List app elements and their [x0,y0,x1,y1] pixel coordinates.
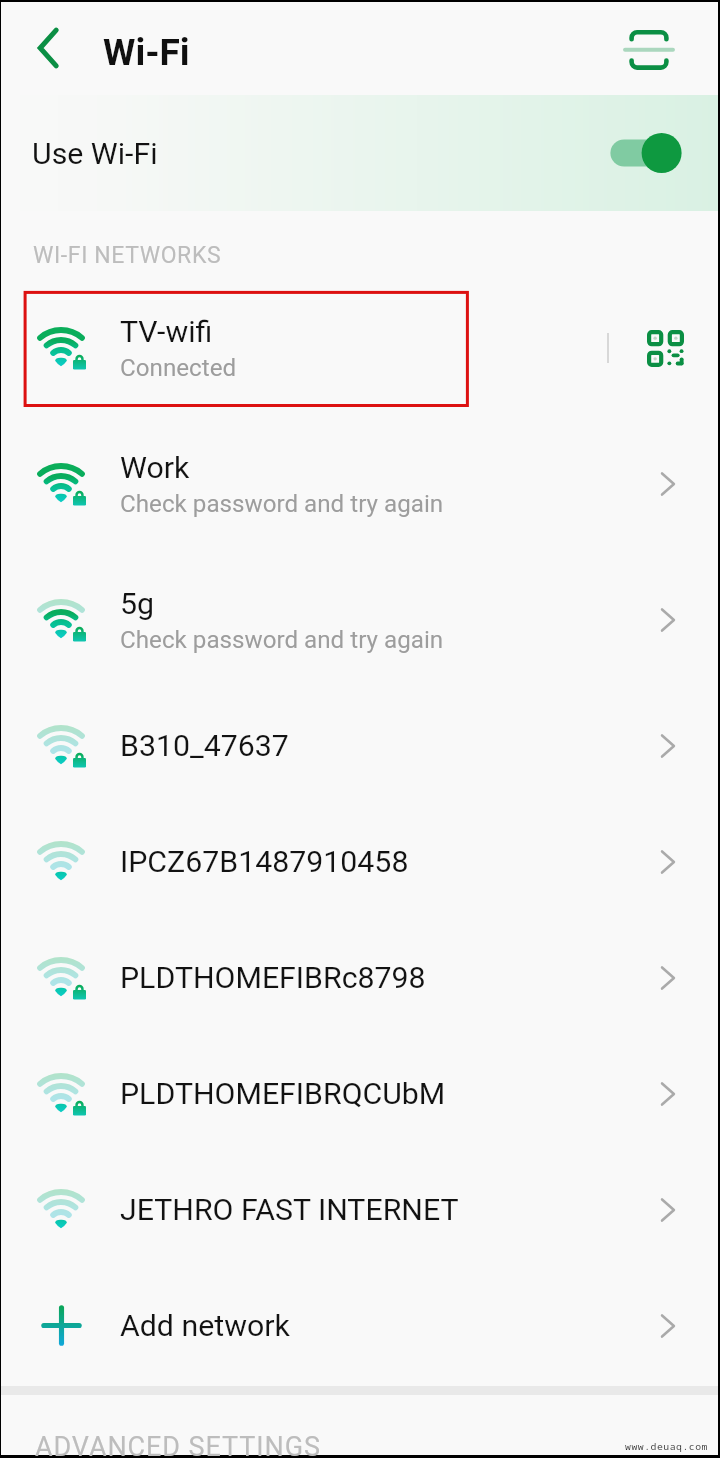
staticText: Wi-Fi [103,31,190,74]
staticText: PLDTHOMEFIBRc8798 [120,960,426,996]
button[interactable]: Share Wi-Fi network QR code [637,320,693,376]
button[interactable]: Work [1,416,718,552]
staticText: Work [120,450,190,486]
button[interactable]: TV-wifi [1,280,718,416]
staticText: TV-wifi [120,314,213,350]
button[interactable]: Scan QR code [617,18,681,82]
staticText: 5g [120,586,155,622]
button[interactable]: IPCZ67B1487910458 [1,804,718,920]
button[interactable]: 5g [1,552,718,688]
staticText: WI-FI NETWORKS [33,242,222,269]
staticText: www.deuaq.com [625,1440,708,1453]
staticText: Check password and try again [120,490,444,518]
staticText: PLDTHOMEFIBRQCUbM [120,1076,446,1112]
staticText: Connected [120,354,237,382]
staticText: Use Wi-Fi [32,136,158,172]
staticText: B310_47637 [120,728,289,764]
button[interactable]: B310_47637 [1,688,718,804]
staticText: Add network [120,1308,290,1344]
button[interactable]: JETHRO FAST INTERNET [1,1152,718,1268]
button[interactable]: PLDTHOMEFIBRc8798 [1,920,718,1036]
button[interactable]: PLDTHOMEFIBRQCUbM [1,1036,718,1152]
staticText: Check password and try again [120,626,444,654]
button[interactable]: Use Wi-Fi [1,95,718,211]
button[interactable]: Add network [1,1268,718,1384]
staticText: JETHRO FAST INTERNET [120,1192,459,1228]
staticText: IPCZ67B1487910458 [120,844,409,880]
staticText: ADVANCED SETTINGS [35,1431,321,1458]
button[interactable]: Back [17,16,81,80]
